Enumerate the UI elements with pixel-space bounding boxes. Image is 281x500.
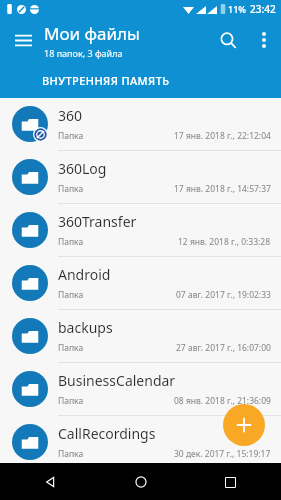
staticText: 23:42	[250, 2, 276, 16]
staticText: ВНУТРЕННЯЯ ПАМЯТЬ	[42, 73, 170, 88]
button[interactable]: Camera	[0, 469, 281, 500]
button[interactable]: More options	[247, 23, 281, 57]
staticText: Папка	[58, 289, 84, 301]
staticText: 07 авг. 2017 г., 19:02:33	[176, 289, 271, 301]
staticText: 17 янв. 2018 г., 22:12:04	[174, 130, 271, 142]
button[interactable]: Android	[0, 257, 281, 309]
staticText: 18 папок, 3 файла	[44, 47, 123, 59]
staticText: 360	[58, 106, 83, 125]
button[interactable]: BusinessCalendar	[0, 363, 281, 415]
staticText: 11%	[228, 3, 246, 15]
staticText: Папка	[58, 395, 84, 407]
staticText: Папка	[58, 342, 84, 354]
staticText: 08 янв. 2018 г., 21:36:09	[174, 395, 271, 407]
button[interactable]: 360	[0, 98, 281, 150]
staticText: Мои файлы	[44, 22, 140, 45]
button[interactable]: 360Log	[0, 151, 281, 203]
staticText: Android	[58, 265, 111, 284]
button[interactable]: Back	[34, 465, 68, 499]
button[interactable]: Open navigation drawer	[6, 23, 40, 57]
staticText: 30 дек. 2017 г., 15:19:17	[174, 448, 271, 460]
button[interactable]: backups	[0, 310, 281, 362]
staticText: Папка	[58, 130, 84, 142]
button[interactable]: ВНУТРЕННЯЯ ПАМЯТЬ	[0, 73, 281, 88]
button[interactable]: Home	[124, 465, 158, 499]
button[interactable]: Search	[209, 21, 247, 59]
staticText: 12 янв. 2018 г., 0:33:28	[178, 236, 271, 248]
staticText: 17 янв. 2018 г., 14:57:37	[174, 183, 271, 195]
staticText: Папка	[58, 236, 84, 248]
staticText: CallRecordings	[58, 424, 156, 443]
staticText: 27 авг. 2017 г., 16:07:00	[176, 342, 271, 354]
staticText: backups	[58, 318, 113, 337]
button[interactable]: 360Transfer	[0, 204, 281, 256]
staticText: Папка	[58, 448, 84, 460]
staticText: 360Log	[58, 159, 107, 178]
button[interactable]: Recent apps	[213, 465, 247, 499]
staticText: BusinessCalendar	[58, 371, 176, 390]
button[interactable]: CallRecordings	[0, 416, 281, 468]
staticText: 360Transfer	[58, 212, 137, 231]
button[interactable]: Add	[223, 404, 265, 446]
staticText: Папка	[58, 183, 84, 195]
